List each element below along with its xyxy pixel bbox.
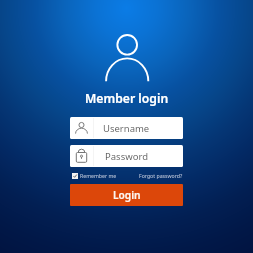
button[interactable]: Password	[70, 145, 183, 167]
button[interactable]: Login	[70, 184, 183, 206]
staticText: Login	[113, 188, 141, 202]
staticText: Member login	[85, 90, 169, 107]
button[interactable]: Forgot password?	[139, 172, 183, 179]
button[interactable]: Remember me	[72, 172, 117, 179]
staticText: Password	[105, 150, 148, 163]
button[interactable]: Username	[70, 117, 183, 139]
staticText: Username	[103, 122, 150, 135]
staticText: Remember me	[80, 172, 117, 179]
